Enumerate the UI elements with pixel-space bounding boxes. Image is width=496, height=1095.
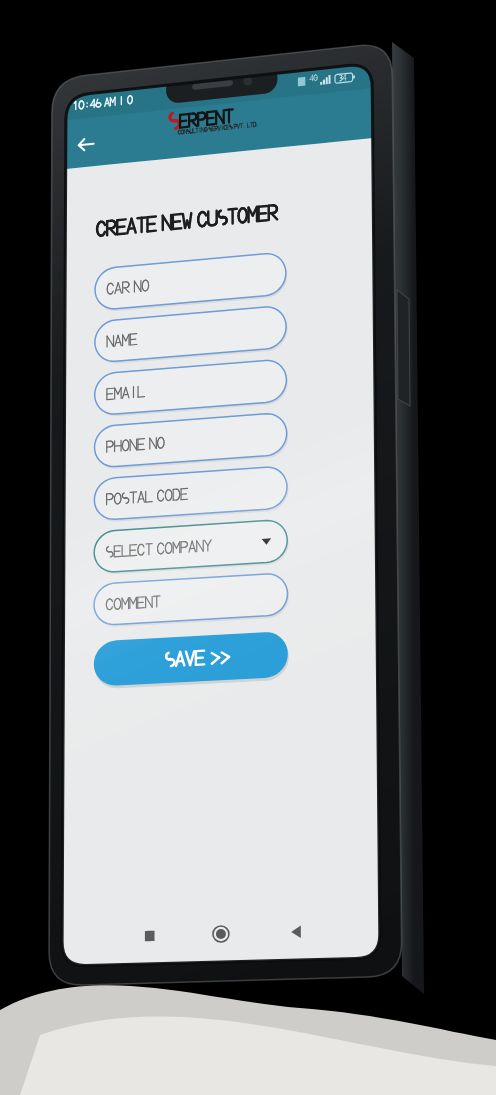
button[interactable]: Email: [101, 430, 331, 480]
button[interactable]: Back: [258, 966, 302, 1004]
button[interactable]: Back: [62, 118, 102, 160]
button[interactable]: Phone no: [101, 494, 331, 544]
button[interactable]: Select Company: [101, 627, 331, 677]
button[interactable]: Car No: [101, 303, 331, 353]
button[interactable]: Postal code: [101, 558, 331, 608]
button[interactable]: Recents: [127, 962, 171, 1000]
button[interactable]: Home: [196, 964, 240, 1002]
button[interactable]: Name: [101, 366, 331, 416]
